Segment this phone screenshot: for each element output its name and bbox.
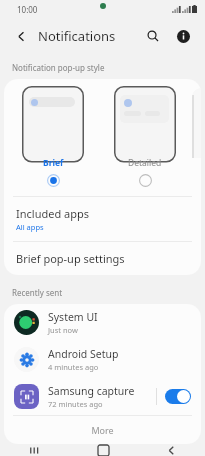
staticText: Brief pop-up settings xyxy=(16,251,125,266)
button[interactable]: More xyxy=(4,416,201,444)
button[interactable]: Included apps xyxy=(4,197,201,241)
staticText: System UI xyxy=(48,310,98,324)
button[interactable]: Detailed xyxy=(106,86,184,190)
button[interactable]: Home xyxy=(69,444,137,456)
staticText: Detailed xyxy=(128,157,162,169)
button[interactable]: Android Setup xyxy=(4,341,201,378)
staticText: All apps xyxy=(16,222,44,232)
staticText: Recently sent xyxy=(12,287,63,298)
staticText: 4 minutes ago xyxy=(48,362,99,372)
button[interactable]: Samsung capture notifications toggle xyxy=(165,389,191,404)
button[interactable]: Brief pop-up settings xyxy=(4,242,201,275)
staticText: Samsung capture xyxy=(48,384,135,398)
staticText: Brief xyxy=(43,157,64,169)
staticText: 10:00 xyxy=(17,4,38,15)
staticText: More xyxy=(91,424,114,436)
button[interactable]: Brief xyxy=(14,86,92,190)
staticText: Included apps xyxy=(16,206,90,221)
button[interactable]: Recent apps xyxy=(0,444,69,456)
staticText: 72 minutes ago xyxy=(48,399,103,409)
button[interactable]: Back xyxy=(8,23,34,49)
staticText: Notifications xyxy=(38,27,116,45)
staticText: Notification pop-up style xyxy=(12,62,105,73)
staticText: Android Setup xyxy=(48,347,119,361)
button[interactable]: Back xyxy=(137,444,205,456)
button[interactable]: Help xyxy=(171,24,195,48)
button[interactable]: Search xyxy=(141,24,165,48)
button[interactable]: System UI xyxy=(4,304,201,341)
staticText: Just now xyxy=(48,325,78,335)
button[interactable]: Samsung capture xyxy=(4,378,201,415)
